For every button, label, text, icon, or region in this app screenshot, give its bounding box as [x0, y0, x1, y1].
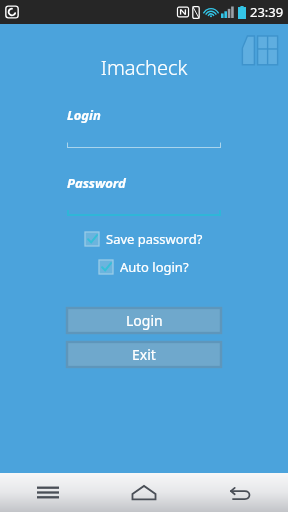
- staticText: Auto login?: [120, 258, 189, 276]
- staticText: Save password?: [106, 230, 203, 248]
- staticText: Imacheck: [0, 54, 288, 81]
- button[interactable]: Imacheck logo: [240, 32, 280, 72]
- staticText: Login: [126, 311, 163, 330]
- staticText: Exit: [132, 345, 156, 364]
- button[interactable]: Back: [192, 473, 288, 512]
- button[interactable]: [67, 140, 221, 148]
- button[interactable]: Login: [67, 308, 221, 333]
- staticText: 23:39: [250, 3, 284, 21]
- staticText: Password: [67, 174, 126, 192]
- button[interactable]: Menu: [0, 473, 96, 512]
- button[interactable]: [67, 208, 221, 216]
- button[interactable]: Exit: [67, 342, 221, 367]
- button[interactable]: Home: [96, 473, 192, 512]
- button[interactable]: Auto login?: [95, 256, 193, 278]
- staticText: Login: [67, 106, 101, 124]
- button[interactable]: Save password?: [81, 228, 207, 250]
